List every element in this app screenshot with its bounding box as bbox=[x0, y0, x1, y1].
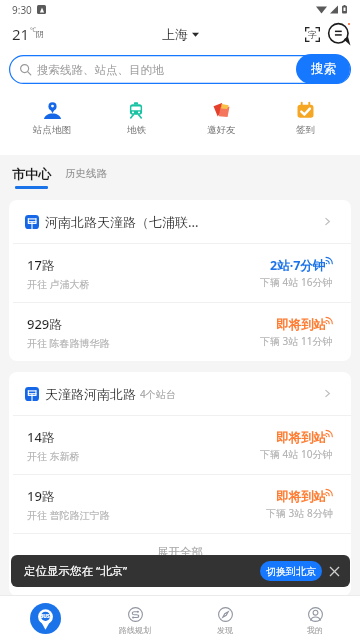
staticText: 开往 东新桥 bbox=[27, 449, 80, 463]
staticText: 即将到站 bbox=[276, 489, 326, 505]
staticText: 字 bbox=[308, 29, 317, 40]
button[interactable]: 历史线路 bbox=[65, 155, 107, 180]
button[interactable]: Translate bbox=[305, 27, 320, 42]
staticText: 17路 bbox=[27, 256, 55, 274]
staticText: 14路 bbox=[27, 428, 55, 446]
staticText: 邀好友 bbox=[207, 124, 236, 136]
staticText: 下辆 4站 10分钟 bbox=[260, 447, 333, 461]
staticText: 发现 bbox=[217, 625, 233, 635]
button[interactable]: 上海 bbox=[162, 26, 199, 42]
staticText: 开往 陈春路博华路 bbox=[27, 336, 110, 350]
staticText: 路线规划 bbox=[119, 625, 151, 635]
staticText: ℃ bbox=[30, 26, 36, 34]
button[interactable]: 路线规划 bbox=[90, 596, 180, 640]
staticText: 切换到北京 bbox=[266, 565, 316, 578]
button[interactable]: 市中心 bbox=[12, 155, 51, 189]
staticText: 地铁 bbox=[127, 124, 146, 136]
staticText: 4个站台 bbox=[140, 387, 176, 401]
staticText: 下辆 3站 8分钟 bbox=[266, 506, 333, 520]
button[interactable]: 我的 bbox=[270, 596, 360, 640]
staticText: 阴 bbox=[36, 29, 44, 39]
staticText: 929路 bbox=[27, 315, 63, 333]
staticText: 下辆 4站 16分钟 bbox=[260, 275, 333, 289]
button[interactable]: Messages bbox=[328, 23, 350, 45]
staticText: 2站·7分钟 bbox=[270, 257, 326, 274]
button[interactable]: 搜索 bbox=[296, 54, 350, 84]
staticText: 天潼路河南北路 bbox=[45, 386, 136, 402]
button[interactable]: 地铁 bbox=[94, 89, 178, 136]
button[interactable]: 14路 bbox=[9, 416, 351, 474]
staticText: 站点地图 bbox=[33, 124, 71, 136]
staticText: 市中心 bbox=[12, 166, 51, 182]
staticText: 展开全部 bbox=[157, 545, 203, 559]
staticText: 开往 普陀路江宁路 bbox=[27, 508, 110, 522]
staticText: 签到 bbox=[296, 124, 315, 136]
button[interactable]: 929路 bbox=[9, 303, 351, 361]
button[interactable]: 天潼路河南北路 bbox=[9, 372, 351, 415]
button[interactable]: Close bbox=[326, 563, 342, 579]
button[interactable]: 发现 bbox=[180, 596, 270, 640]
button[interactable]: 19路 bbox=[9, 475, 351, 533]
staticText: 河南北路天潼路（七浦联… bbox=[45, 213, 199, 231]
staticText: BUS bbox=[40, 613, 50, 620]
staticText: 搜索线路、站点、目的地 bbox=[37, 63, 164, 77]
staticText: 搜索 bbox=[311, 61, 336, 77]
button[interactable]: 站点地图 bbox=[10, 89, 94, 136]
button[interactable]: 签到 bbox=[263, 89, 347, 136]
staticText: 开往 卢浦大桥 bbox=[27, 277, 90, 291]
staticText: 上海 bbox=[162, 26, 188, 42]
button[interactable]: 邀好友 bbox=[179, 89, 263, 136]
button[interactable]: 切换到北京 bbox=[260, 561, 322, 581]
button[interactable]: 展开全部 bbox=[9, 534, 351, 596]
button[interactable]: Bus home bbox=[0, 596, 90, 640]
staticText: 19路 bbox=[27, 487, 55, 505]
button[interactable]: 河南北路天潼路（七浦联… bbox=[9, 200, 351, 243]
staticText: 即将到站 bbox=[276, 430, 326, 446]
staticText: 21 bbox=[12, 24, 30, 44]
staticText: 9:30 bbox=[12, 3, 32, 17]
staticText: 即将到站 bbox=[276, 317, 326, 333]
staticText: 我的 bbox=[307, 625, 323, 635]
staticText: 下辆 3站 11分钟 bbox=[260, 334, 333, 348]
staticText: 定位显示您在 “北京” bbox=[24, 563, 128, 579]
staticText: 历史线路 bbox=[65, 167, 107, 180]
button[interactable]: 17路 bbox=[9, 244, 351, 302]
button[interactable]: 搜索线路、站点、目的地 bbox=[9, 55, 351, 84]
